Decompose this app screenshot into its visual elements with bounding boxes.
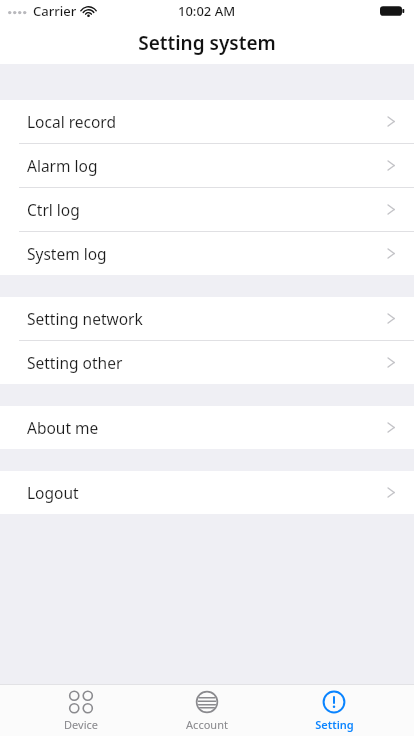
staticText: Account [186,717,228,732]
staticText: System log [27,243,107,264]
staticText: Alarm log [27,155,98,176]
button[interactable]: Alarm log [0,144,414,187]
staticText: Device [64,717,98,732]
staticText: Setting network [27,308,143,329]
button[interactable]: Logout [0,471,414,514]
staticText: Local record [27,111,116,132]
button[interactable]: Account [161,690,253,732]
staticText: Carrier [33,2,77,20]
button[interactable]: Ctrl log [0,188,414,231]
staticText: Setting other [27,352,123,373]
button[interactable]: Local record [0,100,414,143]
staticText: About me [27,417,99,438]
button[interactable]: System log [0,232,414,275]
button[interactable]: Setting [288,690,380,732]
button[interactable]: Setting other [0,341,414,384]
staticText: Logout [27,482,79,503]
button[interactable]: About me [0,406,414,449]
button[interactable]: Setting network [0,297,414,340]
button[interactable]: Device [35,690,127,732]
staticText: Setting system [138,30,276,56]
staticText: 10:02 AM [178,2,236,20]
staticText: Setting [315,717,354,732]
staticText: Ctrl log [27,199,80,220]
